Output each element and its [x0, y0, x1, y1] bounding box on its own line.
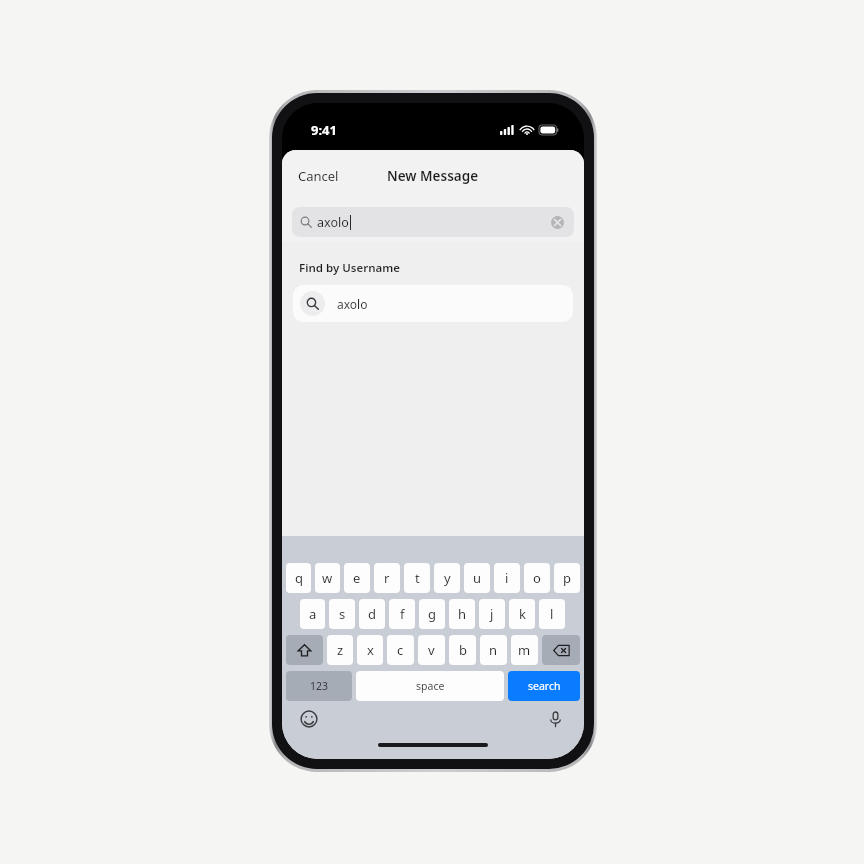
button[interactable]: axolo: [292, 207, 574, 237]
button[interactable]: w: [315, 563, 340, 593]
button[interactable]: Clear text: [548, 213, 566, 231]
button[interactable]: o: [524, 563, 550, 593]
staticText: Cancel: [298, 167, 339, 185]
button[interactable]: n: [480, 635, 507, 665]
button[interactable]: p: [554, 563, 580, 593]
staticText: b: [459, 641, 467, 659]
staticText: u: [473, 569, 482, 587]
button[interactable]: axolo: [293, 285, 573, 322]
button[interactable]: q: [286, 563, 311, 593]
button[interactable]: d: [359, 599, 385, 629]
button[interactable]: f: [389, 599, 415, 629]
button[interactable]: r: [374, 563, 400, 593]
staticText: p: [563, 569, 571, 587]
button[interactable]: m: [511, 635, 538, 665]
button[interactable]: x: [357, 635, 383, 665]
staticText: k: [519, 605, 526, 623]
staticText: w: [322, 569, 333, 587]
button[interactable]: t: [404, 563, 430, 593]
button[interactable]: u: [464, 563, 490, 593]
staticText: a: [309, 605, 317, 623]
staticText: y: [444, 569, 451, 587]
button[interactable]: j: [479, 599, 505, 629]
staticText: s: [339, 605, 346, 623]
staticText: f: [400, 605, 405, 623]
staticText: m: [518, 641, 531, 659]
staticText: l: [550, 605, 554, 623]
staticText: 123: [310, 679, 329, 693]
button[interactable]: Dictation: [542, 706, 568, 732]
staticText: z: [337, 641, 344, 659]
button[interactable]: s: [329, 599, 355, 629]
staticText: c: [397, 641, 404, 659]
button[interactable]: h: [449, 599, 475, 629]
button[interactable]: g: [419, 599, 445, 629]
button[interactable]: l: [539, 599, 565, 629]
staticText: e: [353, 569, 361, 587]
button[interactable]: y: [434, 563, 460, 593]
staticText: h: [458, 605, 467, 623]
button[interactable]: b: [449, 635, 476, 665]
button[interactable]: c: [387, 635, 414, 665]
staticText: j: [490, 605, 494, 623]
staticText: d: [368, 605, 376, 623]
staticText: search: [528, 679, 561, 693]
staticText: o: [533, 569, 541, 587]
button[interactable]: v: [418, 635, 445, 665]
button[interactable]: space: [356, 671, 504, 701]
staticText: t: [415, 569, 420, 587]
staticText: i: [505, 569, 509, 587]
button[interactable]: 123: [286, 671, 352, 701]
staticText: n: [489, 641, 498, 659]
button[interactable]: Cancel: [290, 161, 347, 191]
button[interactable]: search: [508, 671, 580, 701]
staticText: g: [428, 605, 436, 623]
button[interactable]: k: [509, 599, 535, 629]
button[interactable]: Shift: [286, 635, 323, 665]
staticText: q: [295, 569, 303, 587]
staticText: axolo: [317, 214, 349, 231]
staticText: r: [384, 569, 390, 587]
button[interactable]: z: [327, 635, 353, 665]
staticText: Find by Username: [299, 260, 401, 276]
staticText: 9:41: [311, 121, 337, 139]
staticText: New Message: [387, 167, 479, 185]
button[interactable]: Backspace: [542, 635, 580, 665]
button[interactable]: i: [494, 563, 520, 593]
staticText: v: [428, 641, 435, 659]
staticText: space: [416, 679, 445, 693]
button[interactable]: Emoji: [296, 706, 322, 732]
button[interactable]: e: [344, 563, 370, 593]
staticText: axolo: [337, 296, 368, 312]
staticText: x: [367, 641, 374, 659]
button[interactable]: a: [300, 599, 325, 629]
